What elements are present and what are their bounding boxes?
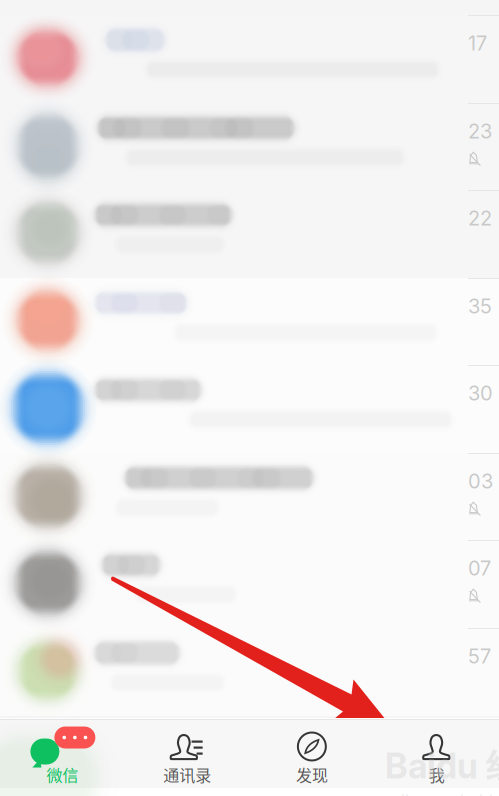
staticText: 03 (468, 469, 493, 493)
staticText: 07 (468, 556, 491, 580)
staticText: 22 (468, 206, 492, 230)
staticText: 17 (468, 31, 487, 55)
staticText: 35 (468, 294, 492, 318)
staticText: 我 (429, 763, 445, 786)
button[interactable]: 我 (374, 720, 499, 788)
staticText: 57 (468, 644, 491, 668)
staticText: 30 (468, 381, 493, 405)
staticText: 微信 (46, 763, 78, 786)
staticText: Baidu 经验 (385, 745, 499, 789)
staticText: 通讯录 (163, 763, 211, 786)
staticText: 23 (468, 119, 492, 143)
button[interactable]: 微信 (0, 720, 125, 788)
button[interactable]: 通讯录 (125, 720, 250, 788)
button[interactable]: 发现 (249, 720, 374, 788)
staticText: 发现 (296, 763, 328, 786)
